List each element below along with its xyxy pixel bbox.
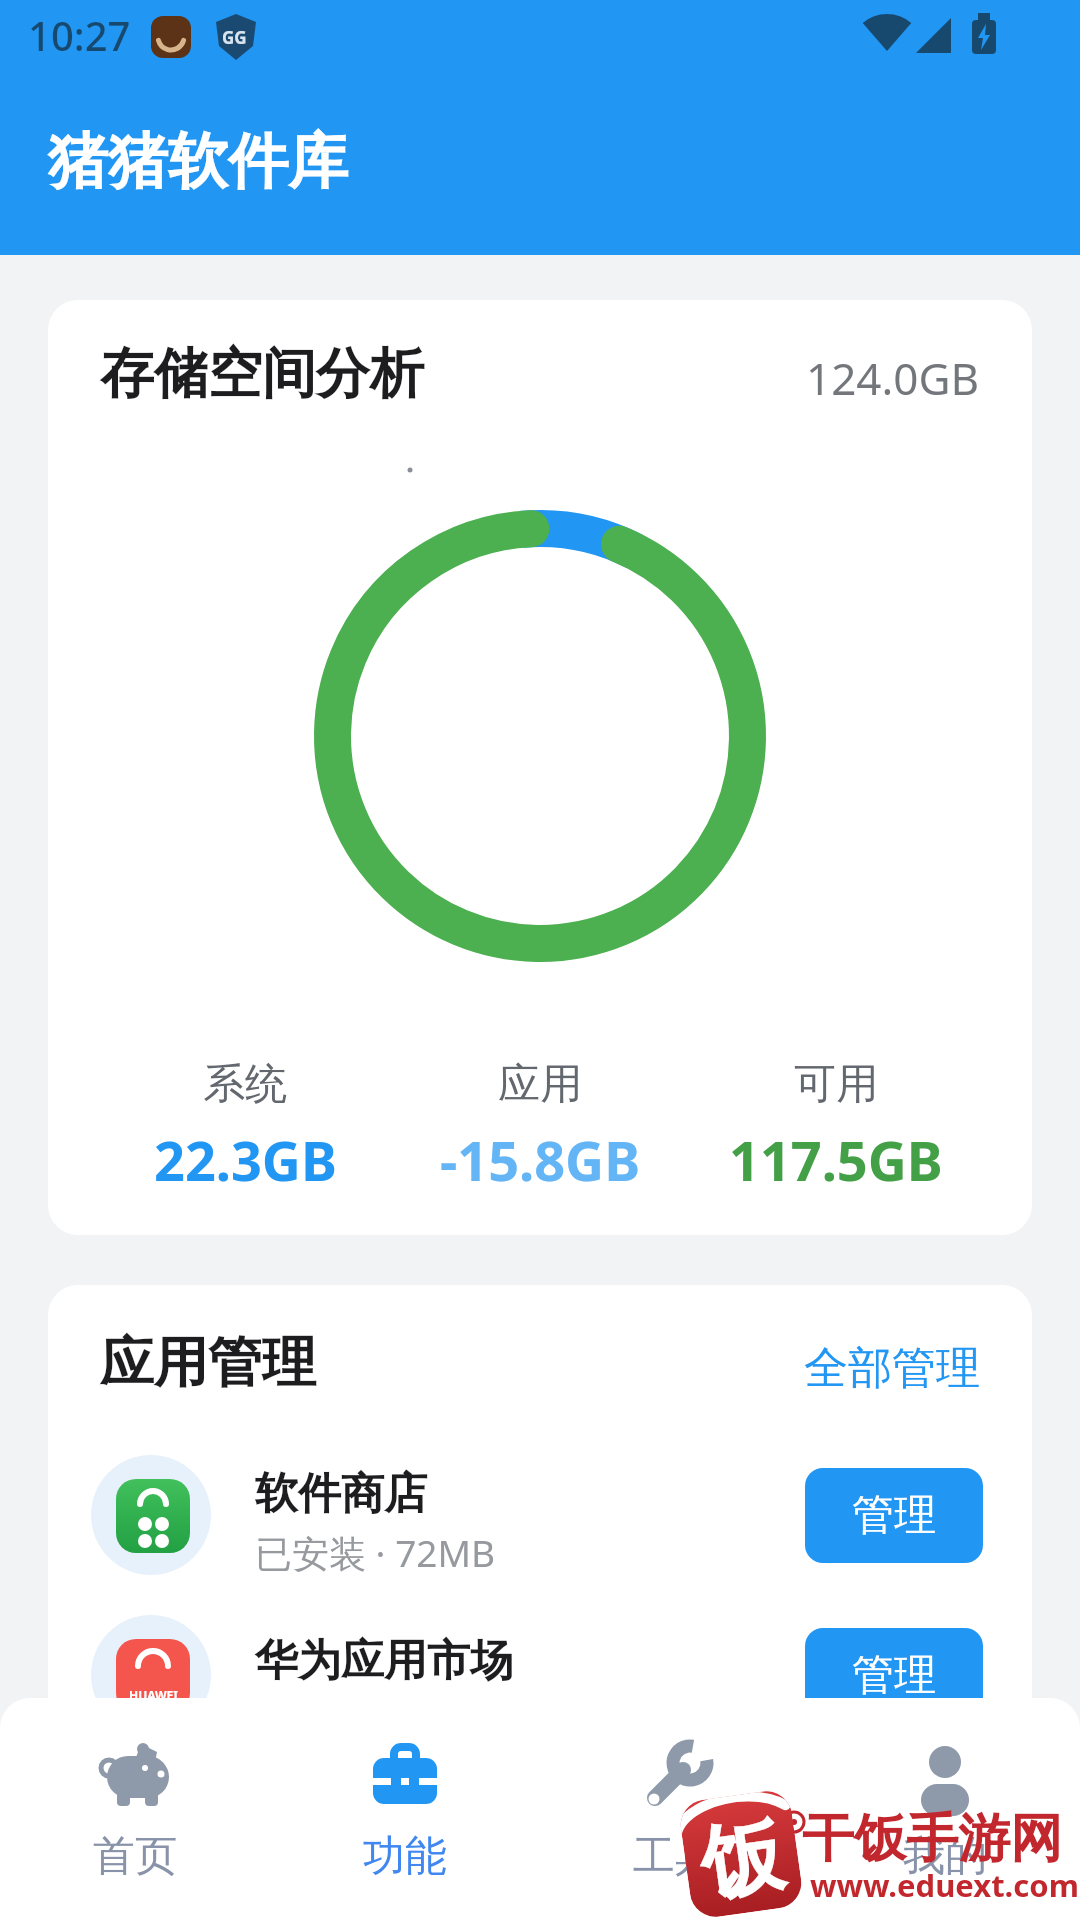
staticText: 117.5GB [729, 1123, 943, 1197]
staticText: 首页 [93, 1830, 177, 1883]
staticText: 应用 [498, 1058, 582, 1111]
staticText: 应用管理 [100, 1329, 316, 1397]
staticText: -15.8GB [440, 1123, 641, 1197]
staticText: 猪猪软件库 [48, 124, 348, 200]
staticText: 全部管理 [804, 1341, 980, 1396]
staticText: 可用 [794, 1058, 878, 1111]
staticText: www.eduext.com [810, 1864, 1079, 1906]
staticText: 124.0GB [806, 348, 980, 408]
staticText: 管理 [852, 1489, 936, 1542]
staticText: 系统 [203, 1058, 287, 1111]
staticText: 华为应用市场 [255, 1634, 513, 1688]
staticText: 22.3GB [154, 1123, 337, 1197]
staticText: 存储空间分析 [100, 340, 424, 408]
staticText: 管理 [852, 1649, 936, 1702]
staticText: 干饭手游网 [802, 1806, 1062, 1872]
staticText: GG [222, 26, 247, 49]
staticText: 软件商店 [255, 1467, 427, 1521]
staticText: 饭 [694, 1804, 790, 1917]
staticText: 我的 [903, 1830, 987, 1883]
staticText: HUAWEI [129, 1687, 178, 1703]
staticText: 工具 [633, 1830, 717, 1883]
staticText: 功能 [363, 1830, 447, 1883]
staticText: 10:27 [28, 8, 131, 62]
staticText: 已安装 · 72MB [255, 1527, 496, 1578]
